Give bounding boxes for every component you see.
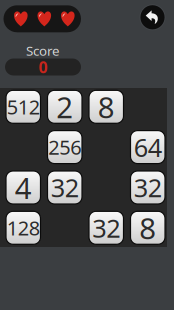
staticText: 512: [7, 93, 40, 120]
staticText: 2: [56, 87, 73, 126]
staticText: 32: [134, 171, 162, 204]
staticText: 8: [139, 208, 156, 247]
staticText: 32: [92, 211, 120, 245]
staticText: Score: [26, 42, 60, 59]
staticText: 32: [51, 171, 79, 204]
staticText: 4: [15, 168, 32, 207]
button[interactable]: Undo: [139, 4, 165, 30]
staticText: 256: [48, 134, 81, 160]
staticText: 0: [38, 56, 47, 78]
staticText: 64: [134, 130, 162, 164]
staticText: 8: [98, 87, 115, 126]
staticText: 128: [7, 214, 40, 241]
button[interactable]: Lives: [3, 5, 81, 32]
